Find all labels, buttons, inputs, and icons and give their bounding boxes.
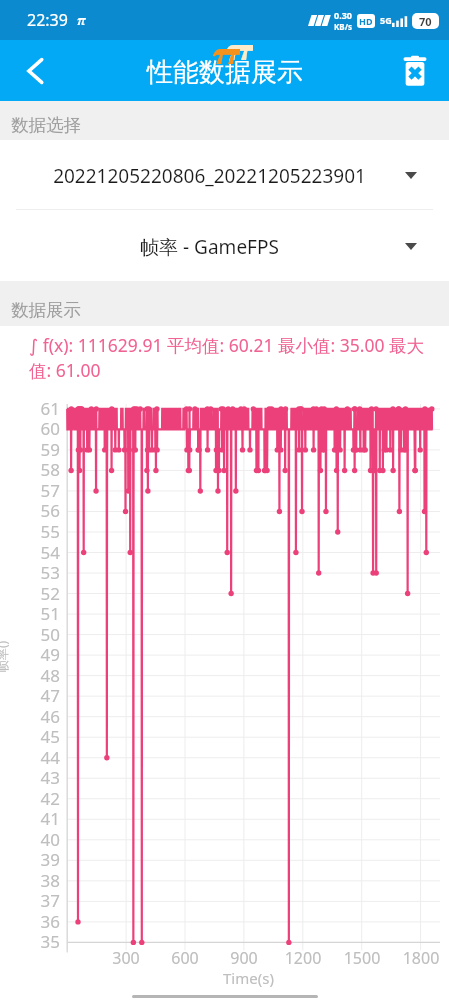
staticText: 38 <box>0 869 60 892</box>
staticText: 900 <box>214 947 274 969</box>
staticText: 20221205220806_20221205223901 <box>53 163 366 189</box>
staticText: 53 <box>0 561 60 584</box>
staticText: 57 <box>0 479 60 502</box>
staticText: 37 <box>0 889 60 912</box>
staticText: 帧率() <box>0 640 10 672</box>
staticText: ∫ f(x): 111629.91 平均值: 60.21 最小值: 35.00 … <box>29 333 437 382</box>
staticText: 22:39 <box>27 9 68 31</box>
staticText: 300 <box>96 947 156 969</box>
staticText: 42 <box>0 787 60 810</box>
staticText: 56 <box>0 499 60 522</box>
staticText: 60 <box>0 417 60 440</box>
staticText: 45 <box>0 725 60 748</box>
staticText: 39 <box>0 848 60 871</box>
staticText: 5G <box>380 14 392 26</box>
staticText: 58 <box>0 458 60 481</box>
staticText: 54 <box>0 541 60 564</box>
staticText: 1500 <box>332 947 392 969</box>
button[interactable]: 20221205220806_20221205223901 <box>0 140 449 209</box>
staticText: 0.30 <box>334 9 352 21</box>
staticText: π <box>211 26 240 64</box>
staticText: 49 <box>0 643 60 666</box>
staticText: 46 <box>0 705 60 728</box>
staticText: KB/s <box>334 21 352 32</box>
staticText: 35 <box>0 930 60 953</box>
staticText: 600 <box>155 947 215 969</box>
staticText: 44 <box>0 746 60 769</box>
staticText: 43 <box>0 766 60 789</box>
staticText: 性能数据展示 <box>147 56 303 89</box>
staticText: 40 <box>0 828 60 851</box>
button[interactable]: Back <box>0 40 70 101</box>
staticText: 数据选择 <box>11 114 81 136</box>
staticText: π <box>77 11 86 29</box>
button[interactable]: 帧率 - GameFPS <box>0 210 449 281</box>
staticText: 59 <box>0 438 60 461</box>
staticText: 61 <box>0 397 60 420</box>
staticText: 36 <box>0 910 60 933</box>
staticText: Time(s) <box>223 968 274 988</box>
staticText: 52 <box>0 582 60 605</box>
staticText: HD <box>359 15 373 27</box>
button[interactable]: Delete <box>380 40 449 101</box>
staticText: 1800 <box>391 947 449 969</box>
staticText: 55 <box>0 520 60 543</box>
staticText: π <box>224 22 253 60</box>
staticText: 70 <box>419 14 432 29</box>
staticText: 50 <box>0 623 60 646</box>
staticText: 数据展示 <box>11 299 81 321</box>
staticText: 41 <box>0 807 60 830</box>
staticText: 47 <box>0 684 60 707</box>
staticText: 48 <box>0 664 60 687</box>
staticText: 帧率 - GameFPS <box>140 234 279 260</box>
staticText: 1200 <box>273 947 333 969</box>
staticText: 51 <box>0 602 60 625</box>
